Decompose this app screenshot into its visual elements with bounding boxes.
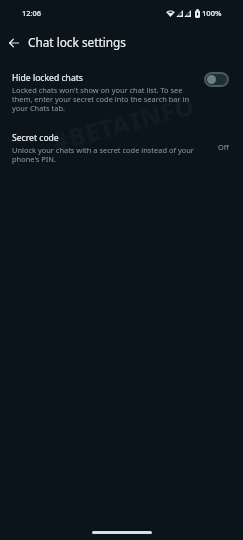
staticText: Hide locked chats	[12, 72, 83, 84]
staticText: Locked chats won't show on your chat lis…	[12, 86, 194, 113]
staticText: 100%	[202, 8, 222, 18]
staticText: #BETAINFO	[48, 88, 199, 158]
staticText: Secret code	[12, 132, 59, 144]
staticText: Unlock your chats with a secret code ins…	[12, 146, 194, 164]
button[interactable]: Hide locked chats	[0, 72, 243, 113]
button[interactable]: Secret code	[0, 132, 243, 164]
button[interactable]: Back	[2, 31, 25, 54]
staticText: Chat lock settings	[28, 34, 126, 50]
staticText: Off	[218, 142, 229, 152]
button[interactable]: Hide locked chats	[204, 72, 229, 87]
staticText: 12:06	[22, 8, 41, 18]
